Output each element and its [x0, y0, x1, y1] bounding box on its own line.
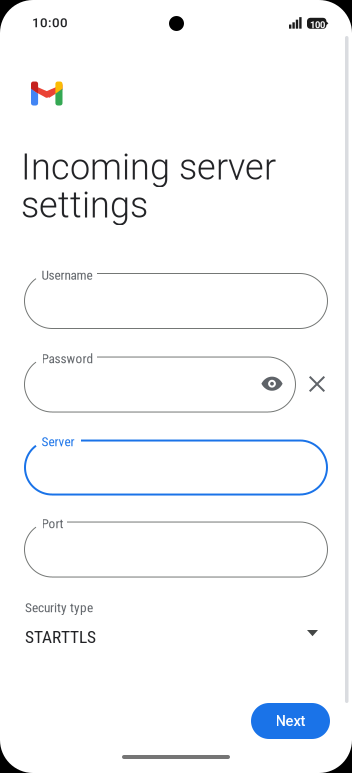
staticText: Security type [25, 600, 93, 616]
staticText: settings [21, 184, 148, 226]
button[interactable]: Username [24, 273, 328, 329]
button[interactable]: Port [24, 521, 328, 577]
staticText: 10:00 [32, 15, 68, 31]
staticText: STARTTLS [25, 627, 96, 647]
button[interactable]: Security type [24, 600, 328, 648]
staticText: Incoming server [21, 146, 276, 188]
staticText: Server [41, 434, 74, 450]
button[interactable]: Password [24, 356, 296, 412]
staticText: Next [275, 712, 305, 730]
button[interactable]: Clear [299, 366, 335, 402]
button[interactable]: Server [24, 439, 328, 495]
staticText: Port [41, 516, 63, 532]
staticText: Username [41, 267, 92, 283]
staticText: 100 [310, 20, 325, 30]
staticText: Password [41, 351, 93, 367]
button[interactable]: Next [251, 703, 330, 739]
